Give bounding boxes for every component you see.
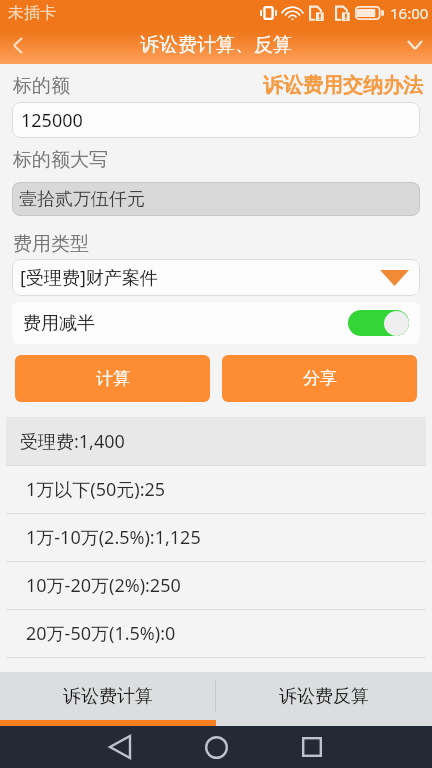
staticText: 1万-10万(2.5%):1,125 [26, 525, 201, 550]
button[interactable]: 1万-10万(2.5%):1,125 [6, 514, 426, 561]
button[interactable]: 125000 [12, 102, 420, 138]
staticText: [受理费]财产案件 [20, 265, 158, 290]
button[interactable]: 费用减半 [12, 302, 420, 344]
staticText: 标的额 [13, 74, 70, 98]
staticText: 费用减半 [23, 312, 95, 335]
button[interactable]: 诉讼费反算 [216, 672, 432, 720]
staticText: 壹拾贰万伍仟元 [19, 188, 145, 211]
button[interactable]: Recent apps [276, 726, 348, 768]
button[interactable]: 1万以下(50元):25 [6, 466, 426, 513]
button[interactable]: Back [84, 726, 156, 768]
button[interactable]: 诉讼费用交纳办法 [263, 73, 423, 98]
staticText: 诉讼费计算、反算 [140, 33, 292, 57]
staticText: 10万-20万(2%):250 [26, 573, 181, 598]
button[interactable]: 诉讼费计算 [0, 672, 215, 720]
button[interactable]: Half fee toggle, on [348, 310, 409, 336]
button[interactable]: Home [180, 726, 252, 768]
staticText: 标的额大写 [13, 148, 432, 172]
button[interactable]: 10万-20万(2%):250 [6, 562, 426, 609]
button[interactable]: 受理费:1,400 [6, 417, 426, 465]
button[interactable]: 计算 [15, 355, 210, 402]
staticText: 费用类型 [13, 232, 432, 256]
staticText: 125000 [21, 108, 83, 133]
staticText: 受理费:1,400 [20, 429, 125, 454]
staticText: 诉讼费反算 [279, 685, 369, 708]
button[interactable]: [受理费]财产案件 [12, 259, 420, 296]
button[interactable]: Back [0, 26, 36, 64]
staticText: 未插卡 [8, 3, 56, 23]
button[interactable]: More options [397, 26, 432, 64]
button[interactable]: 20万-50万(1.5%):0 [6, 610, 426, 657]
button[interactable]: 分享 [222, 355, 417, 402]
staticText: 16:00 [390, 3, 429, 23]
staticText: 1万以下(50元):25 [26, 477, 166, 502]
staticText: 20万-50万(1.5%):0 [26, 621, 176, 646]
staticText: 分享 [303, 368, 337, 389]
staticText: 诉讼费用交纳办法 [263, 73, 423, 98]
staticText: 计算 [96, 368, 130, 389]
staticText: 诉讼费计算 [63, 685, 153, 708]
